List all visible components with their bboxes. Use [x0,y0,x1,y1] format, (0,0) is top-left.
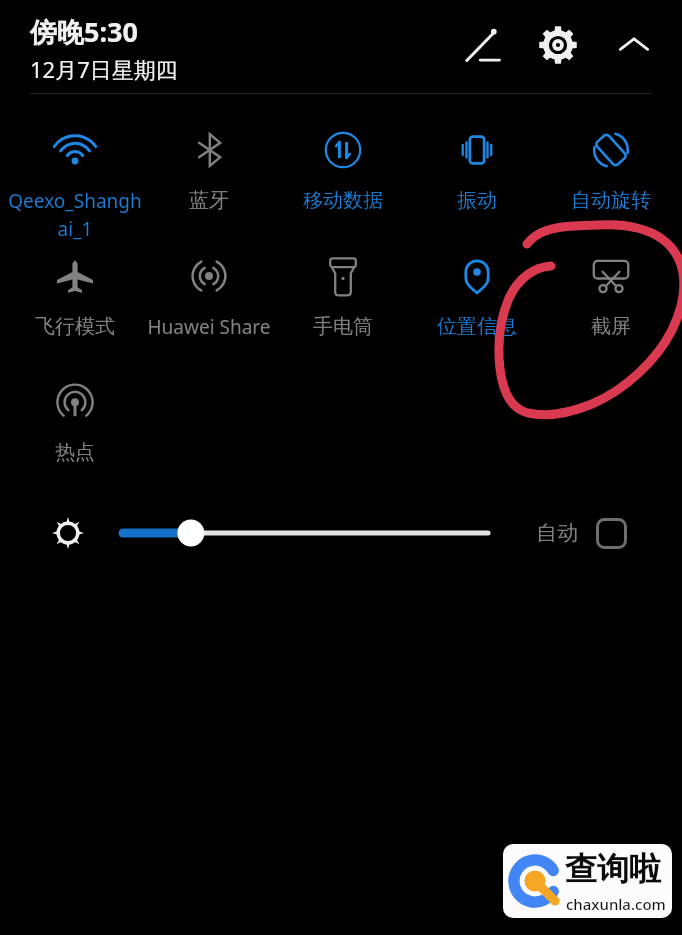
staticText: 12月7日星期四 [30,54,178,84]
button[interactable]: 手电筒 [276,224,410,330]
staticText: 热点 [8,440,142,465]
button[interactable]: 截屏 [544,224,678,330]
staticText: 飞行模式 [8,314,142,339]
staticText: 傍晚5:30 [30,13,138,50]
button[interactable]: 蓝牙 [142,98,276,204]
button[interactable]: Brightness slider [113,513,498,553]
button[interactable]: 热点 [8,349,142,455]
button[interactable]: 移动数据 [276,98,410,204]
staticText: 振动 [410,188,544,213]
staticText: 位置信息 [410,314,544,339]
button[interactable]: 自动 [536,508,627,558]
button[interactable]: Qeexo_Shangh ai_1 [8,98,142,204]
button[interactable]: Collapse [606,17,662,73]
button[interactable]: Settings [530,17,586,73]
button[interactable]: Huawei Share [142,224,276,330]
button[interactable]: 振动 [410,98,544,204]
staticText: 查询啦 [565,849,661,889]
staticText: 自动 [536,520,578,546]
staticText: chaxunla.com [566,894,666,914]
staticText: 截屏 [544,314,678,339]
staticText: 自动旋转 [544,188,678,213]
button[interactable]: Brightness [44,509,92,557]
button[interactable]: Edit [455,17,511,73]
button[interactable]: 位置信息 [410,224,544,330]
staticText: Huawei Share [142,314,276,340]
button[interactable]: 飞行模式 [8,224,142,330]
staticText: 移动数据 [276,188,410,213]
button[interactable]: 自动旋转 [544,98,678,204]
staticText: 手电筒 [276,314,410,339]
staticText: Qeexo_Shangh ai_1 [8,188,142,242]
staticText: 蓝牙 [142,188,276,213]
